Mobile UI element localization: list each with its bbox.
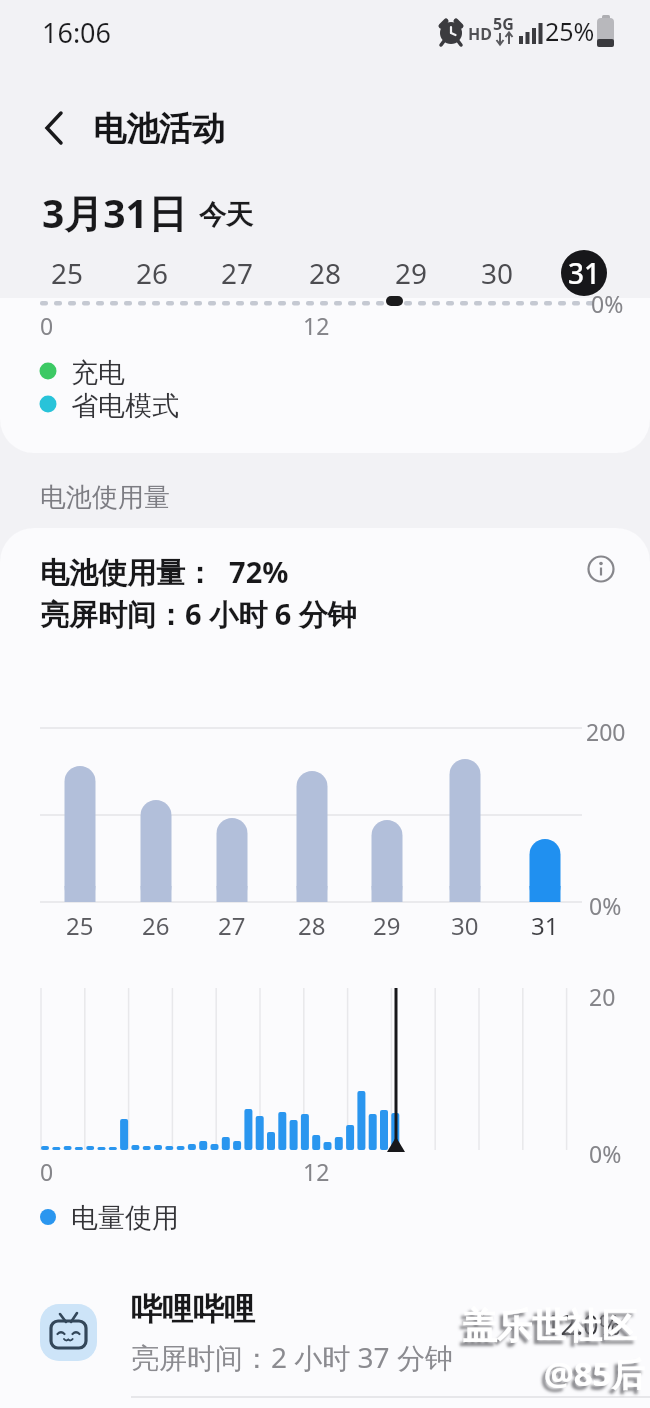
button[interactable]: 27 xyxy=(202,250,272,296)
staticText: 电池使用量 xyxy=(40,481,170,514)
button[interactable]: 30 xyxy=(462,250,532,296)
button[interactable] xyxy=(584,552,618,586)
staticText: 亮屏时间：6 小时 6 分钟 xyxy=(40,594,357,634)
staticText: 电池活动 xyxy=(93,108,225,150)
staticText: 27 xyxy=(218,909,246,942)
staticText: 电池使用量： 72% xyxy=(40,552,289,592)
staticText: 0% xyxy=(591,288,624,319)
staticText: 盖乐世社区 xyxy=(462,1304,637,1348)
button[interactable]: 26 xyxy=(117,250,187,296)
staticText: 0% xyxy=(589,1138,622,1169)
staticText: 29 xyxy=(373,909,401,942)
staticText: 31 xyxy=(531,909,559,942)
staticText: 29 xyxy=(395,254,428,292)
staticText: 30 xyxy=(481,254,514,292)
staticText: 25 xyxy=(66,909,94,942)
button[interactable] xyxy=(30,100,80,156)
staticText: 3月31日 xyxy=(42,186,187,239)
staticText: @85后 xyxy=(544,1351,645,1396)
staticText: 25% xyxy=(545,14,595,48)
button[interactable] xyxy=(20,1278,650,1396)
staticText: 25 xyxy=(51,254,84,292)
staticText: 30 xyxy=(451,909,479,942)
staticText: 省电模式 xyxy=(71,389,179,423)
staticText: 16:06 xyxy=(42,14,112,51)
staticText: 0 xyxy=(40,310,54,341)
staticText: 充电 xyxy=(71,356,125,390)
staticText: 亮屏时间：2 小时 37 分钟 xyxy=(131,1338,453,1376)
staticText: 200 xyxy=(586,716,626,747)
staticText: 哔哩哔哩 xyxy=(131,1290,255,1329)
staticText: 今天 xyxy=(199,198,253,232)
staticText: 28 xyxy=(298,909,326,942)
staticText: 31 xyxy=(568,254,601,292)
staticText: 12 xyxy=(303,1156,330,1187)
staticText: 26 xyxy=(136,254,169,292)
staticText: 27 xyxy=(221,254,254,292)
staticText: 0 xyxy=(40,1156,54,1187)
staticText: 20 xyxy=(589,981,616,1012)
button[interactable]: 28 xyxy=(290,250,360,296)
button[interactable]: 31 xyxy=(561,250,607,296)
staticText: 12.0% xyxy=(545,1306,622,1343)
staticText: 5G xyxy=(493,13,514,35)
button[interactable]: 29 xyxy=(376,250,446,296)
staticText: 电量使用 xyxy=(71,1201,179,1235)
staticText: HD xyxy=(468,23,492,45)
staticText: 28 xyxy=(309,254,342,292)
button[interactable]: 25 xyxy=(32,250,102,296)
staticText: 12 xyxy=(303,310,330,341)
staticText: 0% xyxy=(589,890,622,921)
staticText: 26 xyxy=(142,909,170,942)
